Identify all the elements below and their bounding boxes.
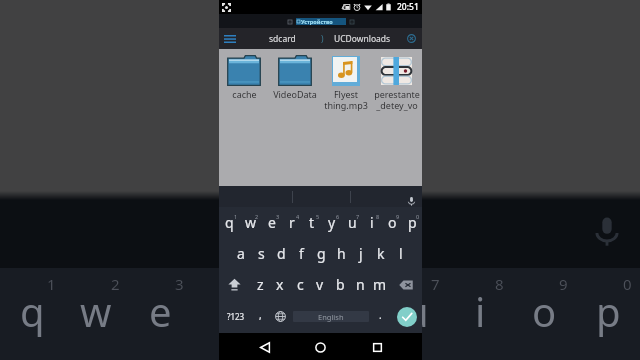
staticText: 7 [356,213,360,220]
staticText: 9 [396,213,400,220]
button[interactable]: . [369,300,392,333]
button[interactable]: Menu [219,28,241,49]
staticText: 7 [431,274,440,294]
button[interactable]: English [293,311,369,322]
button[interactable]: Shift [219,269,250,300]
button[interactable]: 8 [362,207,382,238]
button[interactable]: cache [219,55,269,100]
staticText: d [277,244,286,263]
staticText: 3 [175,274,184,294]
button[interactable]: Done [392,300,422,333]
staticText: q [20,284,45,338]
button[interactable]: 1 [219,207,240,238]
button[interactable]: Flyest thing.mp3 [320,55,371,111]
button[interactable]: Back [252,334,278,360]
staticText: 6 [336,213,340,220]
button[interactable]: Home [307,334,333,360]
staticText: 0 [416,213,420,220]
button[interactable]: d [271,238,291,269]
button[interactable]: 6 [322,207,342,238]
button[interactable]: 3 [261,207,282,238]
staticText: cache [232,88,257,100]
staticText: ) [321,33,324,45]
staticText: 9 [559,274,568,294]
button[interactable]: h [331,238,351,269]
staticText: perestante _detey_vo [374,88,420,111]
staticText: e [149,284,172,338]
button[interactable]: g [311,238,331,269]
staticText: 20:51 [397,1,419,13]
staticText: t [281,284,296,338]
button[interactable]: m [370,269,390,300]
button[interactable]: 7 [342,207,362,238]
staticText: 5 [316,213,320,220]
staticText: p [596,284,621,338]
staticText: 5 [303,274,312,294]
button[interactable]: VideoData [269,55,320,100]
button[interactable]: n [350,269,370,300]
button[interactable]: , [252,300,268,333]
button[interactable]: perestante _detey_vo [371,55,422,111]
staticText: sdcard [269,33,296,45]
button[interactable]: Устройство [296,18,346,25]
staticText: 8 [376,213,380,220]
button[interactable]: x [270,269,290,300]
button[interactable]: ?123 [219,300,252,333]
staticText: 6 [367,274,376,294]
button[interactable]: f [291,238,311,269]
staticText: p [408,213,417,232]
button[interactable]: Recent apps [364,334,390,360]
staticText: z [257,275,264,294]
staticText: 4 [239,274,248,294]
staticText: c [297,275,304,294]
button[interactable]: c [290,269,310,300]
button[interactable]: z [250,269,270,300]
staticText: m [373,275,387,294]
button[interactable]: Backspace [390,269,422,300]
button[interactable]: Voice input [406,196,417,207]
staticText: 0 [623,274,632,294]
staticText: u [348,213,357,232]
staticText: i [475,284,486,338]
button[interactable]: a [230,238,251,269]
button[interactable]: 9 [382,207,402,238]
staticText: o [388,213,397,232]
staticText: x [276,275,284,294]
staticText: Устройство [301,18,333,25]
button[interactable]: 4 [282,207,302,238]
staticText: 2 [255,213,259,220]
button[interactable]: Close [400,28,422,49]
staticText: v [316,275,324,294]
staticText: VideoData [273,88,317,100]
staticText: ?123 [227,311,245,322]
button[interactable]: 5 [302,207,322,238]
staticText: 1 [47,274,56,294]
button[interactable]: s [251,238,271,269]
staticText: Flyest thing.mp3 [324,88,368,111]
staticText: q [225,213,234,232]
staticText: 1 [234,213,238,220]
staticText: 4 [296,213,300,220]
button[interactable]: l [391,238,411,269]
staticText: w [245,213,257,232]
staticText: r [289,213,295,232]
button[interactable]: j [351,238,371,269]
staticText: w [80,284,112,338]
staticText: j [359,244,363,263]
staticText: u [404,284,429,338]
staticText: k [377,244,385,263]
button[interactable]: Change language [268,300,293,333]
staticText: English [318,312,344,322]
staticText: n [356,275,365,294]
button[interactable]: k [371,238,391,269]
button[interactable]: 2 [240,207,261,238]
staticText: r [216,284,233,338]
staticText: i [370,213,374,232]
button[interactable]: 0 [402,207,422,238]
button[interactable]: v [310,269,330,300]
button[interactable]: b [330,269,350,300]
staticText: e [268,213,276,232]
staticText: a [237,244,245,263]
staticText: 3 [276,213,280,220]
staticText: y [328,213,336,232]
